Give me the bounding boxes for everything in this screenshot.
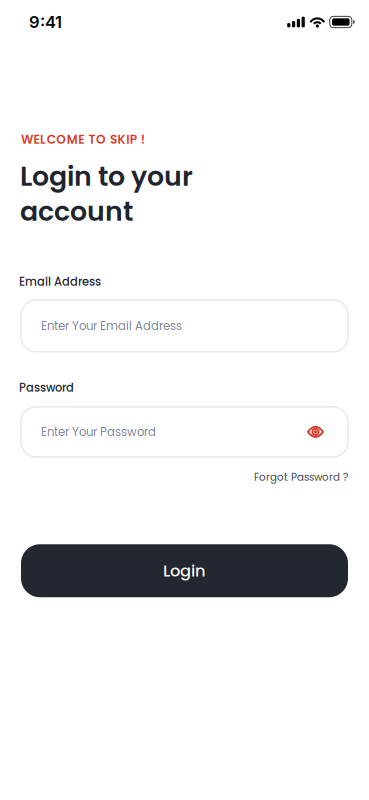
staticText: WELCOME TO SKIP ! bbox=[21, 131, 145, 148]
staticText: Password bbox=[19, 380, 74, 396]
button[interactable]: Enter Your Email Address bbox=[21, 300, 348, 352]
button[interactable]: Show Password bbox=[307, 426, 324, 438]
staticText: Login bbox=[163, 559, 206, 582]
staticText: Email Address bbox=[19, 274, 101, 290]
button[interactable]: Enter Your Password bbox=[21, 407, 348, 457]
staticText: Forgot Password ? bbox=[254, 470, 348, 484]
button[interactable]: Login bbox=[21, 544, 348, 597]
button[interactable]: Forgot Password ? bbox=[254, 470, 348, 484]
staticText: 9:41 bbox=[29, 12, 62, 32]
staticText: Enter Your Password bbox=[41, 424, 156, 440]
staticText: Login to your account bbox=[20, 159, 193, 229]
staticText: Enter Your Email Address bbox=[41, 318, 182, 334]
